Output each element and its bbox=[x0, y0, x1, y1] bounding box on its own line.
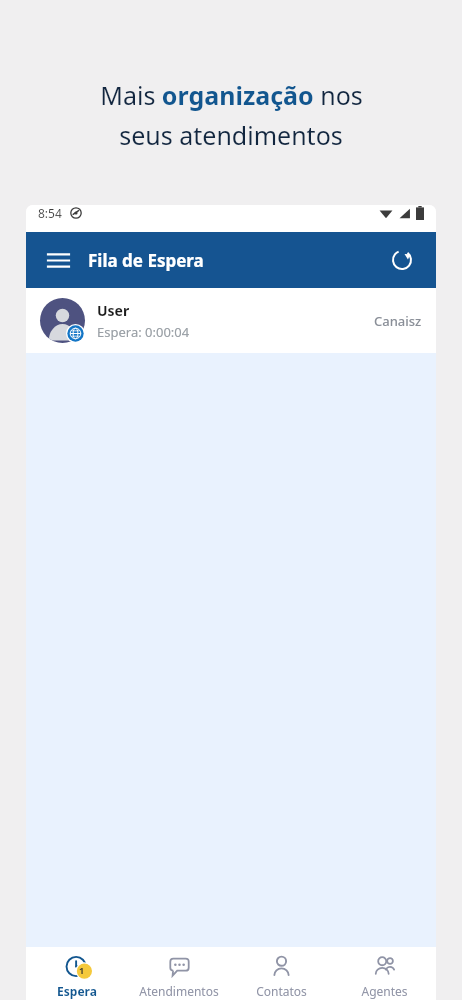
staticText: 1 bbox=[79, 964, 85, 976]
staticText: Mais organização nos bbox=[100, 78, 363, 112]
staticText: seus atendimentos bbox=[119, 118, 343, 152]
button[interactable]: Atendimentos bbox=[128, 949, 230, 999]
staticText: Contatos bbox=[256, 983, 307, 999]
staticText: 8:54 bbox=[38, 205, 62, 221]
staticText: User bbox=[97, 301, 130, 320]
staticText: Espera bbox=[57, 983, 97, 999]
staticText: Fila de Espera bbox=[88, 249, 204, 272]
button[interactable]: 1 bbox=[26, 949, 128, 999]
button[interactable]: Refresh bbox=[380, 238, 424, 282]
staticText: Canaisz bbox=[374, 312, 422, 330]
staticText: Espera: 0:00:04 bbox=[97, 323, 190, 341]
button[interactable]: Menu bbox=[36, 238, 80, 282]
button[interactable]: User bbox=[26, 288, 436, 353]
button[interactable]: Contatos bbox=[230, 949, 333, 999]
staticText: Agentes bbox=[361, 983, 408, 999]
staticText: Atendimentos bbox=[139, 983, 219, 999]
button[interactable]: Agentes bbox=[333, 949, 436, 999]
